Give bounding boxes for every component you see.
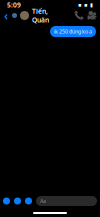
staticText: Tiến, Quân [32, 7, 49, 24]
staticText: 📞 [74, 11, 84, 20]
staticText: ik 250 đúng ko a [54, 28, 92, 35]
button[interactable]: Video call [87, 11, 97, 20]
staticText: 5:09 [7, 1, 21, 9]
staticText: Aa [40, 197, 46, 205]
button[interactable]: Call [74, 11, 84, 20]
button[interactable]: Back [3, 10, 9, 20]
staticText: ‹ [4, 7, 8, 23]
staticText: 🎥 [87, 11, 97, 20]
staticText: ▪ ▪ ▮ [78, 2, 93, 8]
